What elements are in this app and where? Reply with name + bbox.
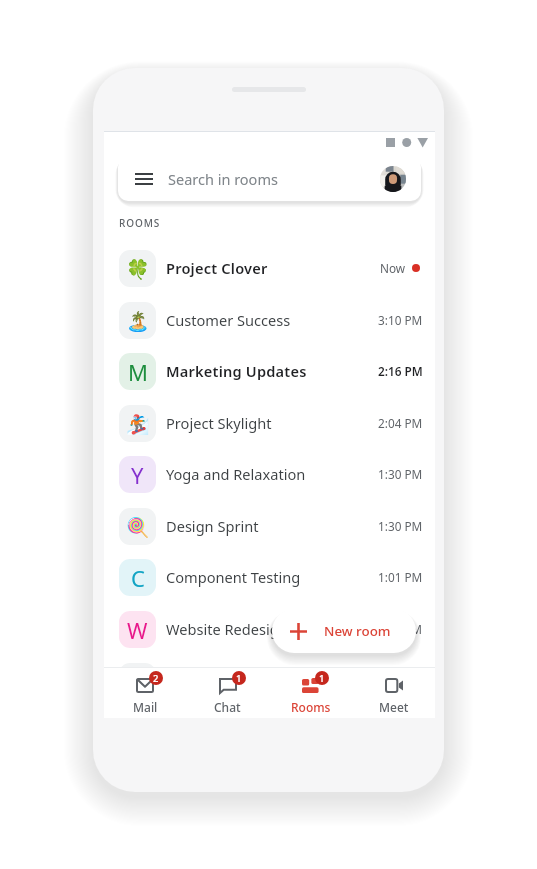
staticText: Component Testing <box>166 567 301 587</box>
button[interactable]: Account <box>380 166 406 192</box>
staticText: Marketing Updates <box>166 361 307 381</box>
staticText: 1 <box>319 672 325 685</box>
staticText: 2 <box>153 672 159 685</box>
button[interactable]: 🍭 <box>104 500 435 552</box>
staticText: Chat <box>214 699 241 715</box>
staticText: Mail <box>133 699 158 715</box>
button[interactable]: 🏂 <box>104 397 435 449</box>
staticText: 1:30 PM <box>378 518 423 534</box>
staticText: 1:30 PM <box>378 466 423 482</box>
staticText: 2:16 PM <box>378 363 423 379</box>
staticText: ROOMS <box>119 216 161 230</box>
staticText: 🏝️ <box>126 310 150 332</box>
button[interactable]: M <box>104 345 435 397</box>
staticText: Project Skylight <box>166 413 272 433</box>
button[interactable]: Menu <box>118 157 421 201</box>
staticText: New room <box>324 622 391 640</box>
staticText: 🍭 <box>126 516 150 538</box>
staticText: Customer Success <box>166 310 291 330</box>
other: Menu <box>135 173 153 185</box>
staticText: Meet <box>379 699 409 715</box>
staticText: Project Clover <box>166 258 268 278</box>
staticText: Y <box>131 460 144 490</box>
staticText: 1 <box>236 672 242 685</box>
staticText: Yoga and Relaxation <box>166 464 306 484</box>
staticText: Search in rooms <box>168 169 278 189</box>
button[interactable]: 1 <box>186 672 269 715</box>
staticText: 12:44 PM <box>371 621 423 637</box>
button[interactable] <box>104 655 435 707</box>
button[interactable]: 1 <box>269 672 352 715</box>
staticText: 🍀 <box>126 258 150 280</box>
staticText: W <box>127 615 148 645</box>
button[interactable]: 2 <box>104 672 186 715</box>
button[interactable]: Y <box>104 448 435 500</box>
button[interactable]: C <box>104 551 435 603</box>
staticText: Now <box>380 260 406 276</box>
staticText: 3:10 PM <box>378 312 423 328</box>
staticText: M <box>128 357 148 387</box>
button[interactable]: W <box>104 603 435 655</box>
staticText: Design Sprint <box>166 516 259 536</box>
staticText: 1:01 PM <box>378 569 423 585</box>
staticText: 2:04 PM <box>378 415 423 431</box>
button[interactable]: Meet <box>352 672 435 715</box>
staticText: C <box>131 563 145 593</box>
staticText: Website Redesign <box>166 619 288 639</box>
staticText: Rooms <box>291 699 331 715</box>
staticText: 🏂 <box>126 413 150 435</box>
button[interactable]: 🍀 <box>104 242 435 294</box>
button[interactable]: 🏝️ <box>104 294 435 346</box>
button[interactable]: New room <box>272 609 416 653</box>
